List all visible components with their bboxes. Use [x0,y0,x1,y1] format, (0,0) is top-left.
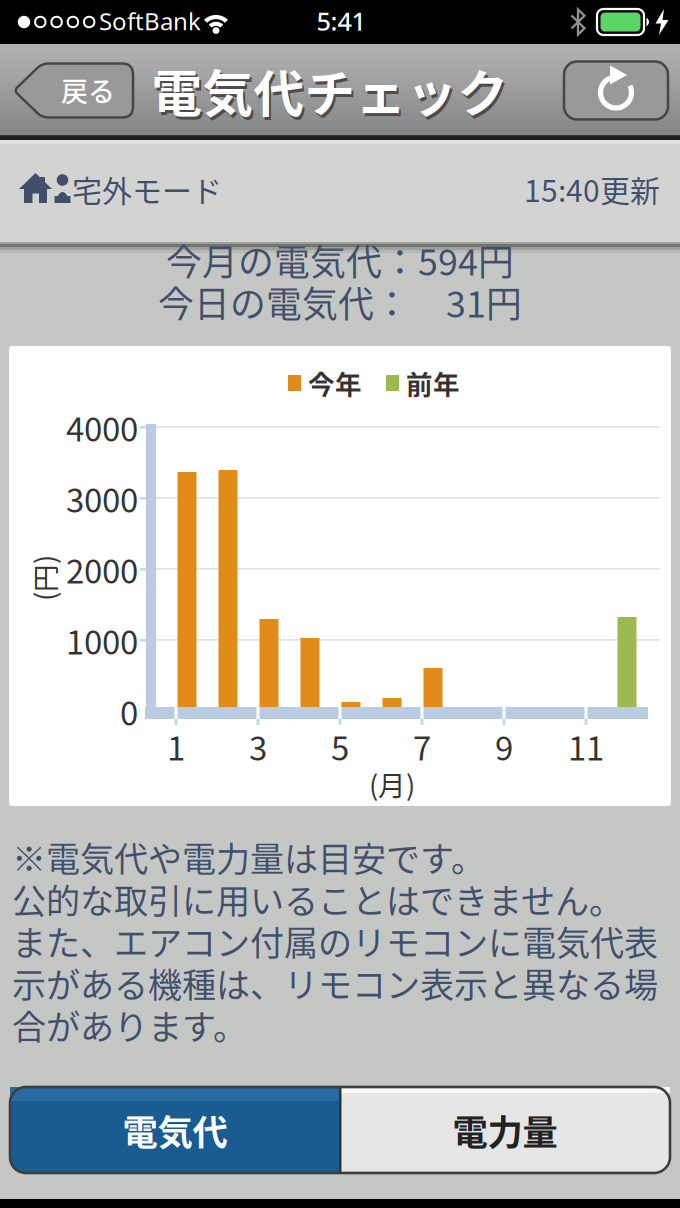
button[interactable]: 更新 [564,61,668,119]
button[interactable]: 電力量 [340,1087,670,1173]
staticText: 2000 [66,545,138,593]
staticText: 宅外モード [72,167,222,211]
staticText: 合があります。 [12,1000,247,1050]
staticText: 11 [568,722,604,770]
staticText: 今日の電気代： 31円 [158,276,522,328]
staticText: SoftBank [99,5,201,37]
staticText: (円) [21,558,67,598]
staticText: (月) [369,764,415,804]
staticText: 電気代 [122,1104,227,1155]
staticText: 公的な取引に用いることはできません。 [12,874,623,924]
staticText: 電気代チェック [151,53,508,126]
staticText: 示がある機種は、リモコン表示と異なる場 [12,958,658,1008]
button[interactable]: 戻る [12,61,135,119]
staticText: 1000 [66,616,138,664]
staticText: 1 [167,722,185,770]
staticText: ※電気代や電力量は目安です。 [12,832,485,882]
staticText: 今年 [308,364,362,402]
staticText: また、エアコン付属のリモコンに電気代表 [12,916,658,966]
staticText: 7 [413,722,431,770]
staticText: 電気代チェック [153,56,510,129]
staticText: 4000 [66,403,138,451]
staticText: 3000 [66,474,138,522]
staticText: 15:40更新 [524,167,660,211]
staticText: 電力量 [452,1104,557,1155]
staticText: 9 [495,722,513,770]
staticText: 5:41 [316,4,365,38]
staticText: 0 [120,687,138,735]
staticText: 前年 [406,364,460,402]
staticText: 3 [249,722,267,770]
button[interactable]: 電気代 [10,1087,340,1173]
staticText: 今月の電気代：594円 [166,234,514,286]
staticText: 5 [331,722,349,770]
staticText: 戻る [61,70,115,110]
